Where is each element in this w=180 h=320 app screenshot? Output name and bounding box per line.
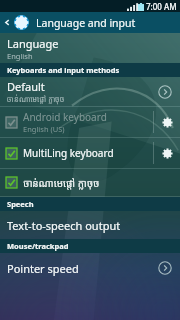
staticText: Pointer speed (7, 261, 79, 276)
staticText: Language (7, 36, 59, 51)
button[interactable]: MultiLing keyboard (0, 138, 180, 168)
staticText: Text-to-speech output (7, 218, 121, 233)
staticText: English (7, 51, 33, 61)
button[interactable]: Android keyboard (0, 107, 180, 137)
button[interactable]: Pointer speed (0, 253, 180, 283)
button[interactable]: Android keyboard settings (154, 107, 180, 137)
staticText: ចាន់ណាមេផ្ដៅ ក្លាចុច (23, 176, 100, 190)
button[interactable]: Back (0, 12, 14, 33)
button[interactable]: ចាន់ណាមេផ្ដៅ ក្លាចុច (0, 169, 180, 196)
button[interactable]: Default (0, 77, 180, 106)
staticText: Android keyboard (23, 110, 107, 124)
staticText: Speech (7, 199, 34, 209)
button[interactable]: MultiLing keyboard settings (154, 138, 180, 168)
staticText: Keyboards and input methods (7, 65, 120, 75)
button[interactable]: Language (0, 33, 180, 63)
staticText: 7:00 AM (146, 1, 177, 12)
staticText: MultiLing keyboard (23, 146, 114, 160)
staticText: Default (7, 79, 45, 94)
button[interactable]: Text-to-speech output (0, 211, 180, 239)
staticText: Language and input (36, 16, 136, 30)
staticText: ចាន់ណាមេផ្ដៅ ក្លាចុច (7, 94, 65, 104)
staticText: English (US) (23, 124, 65, 134)
staticText: Mouse/trackpad (7, 241, 69, 251)
